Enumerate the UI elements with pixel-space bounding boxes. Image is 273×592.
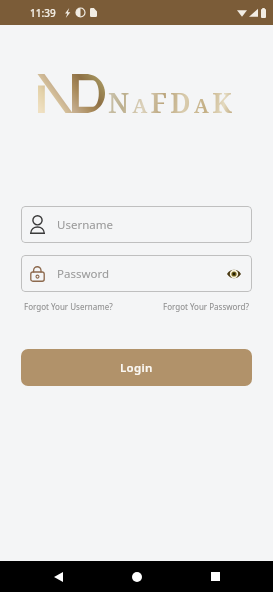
staticText: Login: [120, 360, 153, 376]
staticText: Password: [57, 266, 110, 282]
button[interactable]: Username: [21, 206, 252, 243]
button[interactable]: Home: [117, 561, 157, 592]
button[interactable]: Recent apps: [195, 561, 235, 592]
button[interactable]: Show password: [225, 265, 243, 283]
button[interactable]: Forgot Your Username?: [24, 301, 113, 312]
button[interactable]: Password: [21, 255, 252, 292]
button[interactable]: Back: [38, 561, 78, 592]
staticText: Username: [57, 217, 113, 233]
staticText: 11:39: [30, 6, 56, 20]
button[interactable]: Forgot Your Password?: [163, 301, 249, 312]
staticText: NAFDAK: [108, 84, 236, 121]
button[interactable]: Login: [21, 349, 252, 386]
